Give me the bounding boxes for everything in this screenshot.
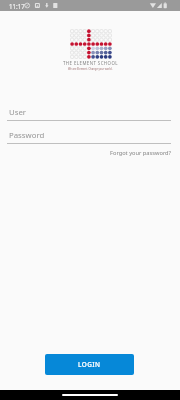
staticText: We are Element. Change your world. [68, 67, 113, 71]
button[interactable]: User [7, 105, 171, 121]
staticText: Password [9, 130, 45, 141]
button[interactable]: LOGIN [45, 354, 134, 375]
staticText: User [9, 107, 27, 118]
button[interactable]: Forgot your password? [109, 148, 173, 158]
staticText: LOGIN [78, 360, 101, 369]
button[interactable]: Password [7, 128, 171, 144]
staticText: THE ELEMENT SCHOOL [63, 60, 118, 66]
staticText: 11:17 [9, 2, 25, 10]
other: Home gesture [62, 394, 118, 396]
staticText: Forgot your password? [110, 149, 172, 157]
